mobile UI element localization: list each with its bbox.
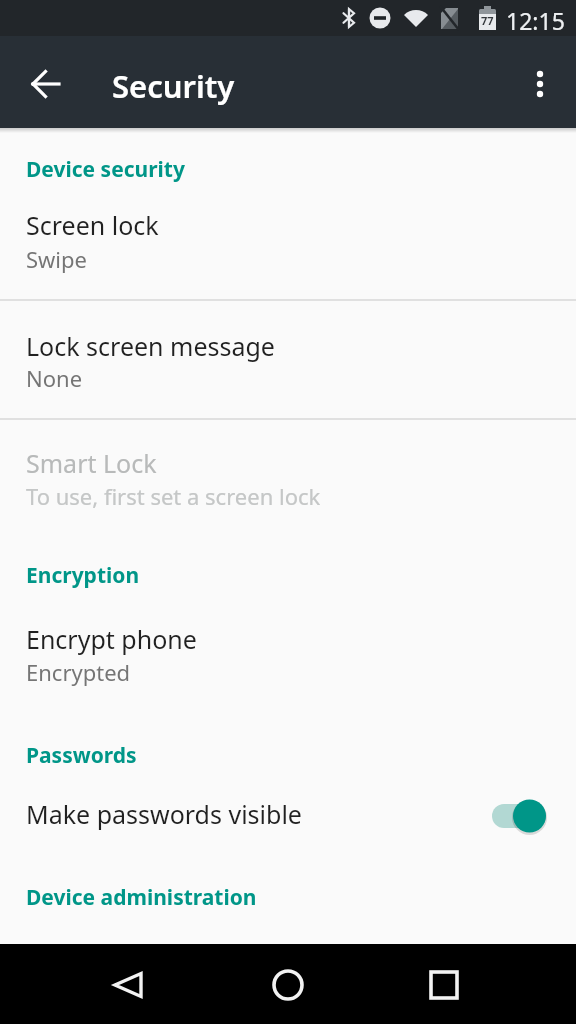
staticText: Smart Lock xyxy=(26,446,157,480)
staticText: Encryption xyxy=(26,561,140,590)
button[interactable]: Make passwords visible xyxy=(0,777,576,847)
button[interactable] xyxy=(18,56,74,112)
staticText: Device security xyxy=(26,155,185,184)
staticText: Swipe xyxy=(26,244,87,274)
staticText: Lock screen message xyxy=(26,329,275,363)
button[interactable] xyxy=(512,64,568,120)
staticText: Screen lock xyxy=(26,208,159,242)
staticText: Encrypted xyxy=(26,657,131,687)
staticText: To use, first set a screen lock xyxy=(26,481,321,511)
button[interactable]: Lock screen message xyxy=(0,297,576,416)
button[interactable]: Smart Lock xyxy=(0,416,576,526)
staticText: None xyxy=(26,363,83,393)
button[interactable]: Screen lock xyxy=(0,191,576,297)
staticText: 12:15 xyxy=(506,5,565,36)
button[interactable] xyxy=(416,957,472,1013)
staticText: Make passwords visible xyxy=(26,797,302,831)
button[interactable] xyxy=(260,957,316,1013)
staticText: Passwords xyxy=(26,741,137,770)
button[interactable]: Encrypt phone xyxy=(0,595,576,705)
staticText: Security xyxy=(112,65,235,107)
staticText: Encrypt phone xyxy=(26,622,197,656)
button[interactable] xyxy=(100,957,156,1013)
staticText: 77 xyxy=(481,13,494,28)
staticText: Device administration xyxy=(26,883,257,912)
